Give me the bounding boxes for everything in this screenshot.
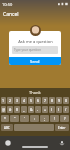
button[interactable]: " <box>10 115 19 122</box>
button[interactable]: ' <box>20 115 29 122</box>
button[interactable]: 1 <box>1 97 6 104</box>
button[interactable]: ? <box>60 115 69 122</box>
button[interactable]: Emoji <box>5 140 11 146</box>
staticText: 7 <box>44 98 47 103</box>
button[interactable]: Enter <box>55 124 69 131</box>
button[interactable]: & <box>28 106 34 113</box>
button[interactable]: 2 <box>7 97 13 104</box>
button[interactable]: @ <box>1 106 6 113</box>
button[interactable]: ! <box>50 115 59 122</box>
staticText: 8 <box>51 98 54 103</box>
staticText: & <box>30 107 33 112</box>
staticText: 1 <box>2 98 5 103</box>
staticText: ABC <box>4 126 10 130</box>
button[interactable]: 6 <box>35 97 41 104</box>
button[interactable]: 7 <box>42 97 48 104</box>
button[interactable]: 4 <box>21 97 27 104</box>
staticText: @ <box>2 107 6 112</box>
staticText: ? <box>64 116 66 121</box>
staticText: ! <box>54 116 55 121</box>
staticText: ( <box>51 107 53 112</box>
staticText: ) <box>58 107 60 112</box>
staticText: - <box>37 107 39 112</box>
staticText: Type your question <box>14 48 42 52</box>
button[interactable]: / <box>63 106 69 113</box>
staticText: $ <box>16 107 19 112</box>
staticText: * <box>4 116 6 121</box>
staticText: ; <box>44 116 45 121</box>
button[interactable]: ) <box>56 106 62 113</box>
button[interactable]: 8 <box>49 97 55 104</box>
staticText: 5 <box>30 98 33 103</box>
staticText: Send <box>30 59 40 64</box>
staticText: 0 <box>65 98 68 103</box>
button[interactable]: ( <box>49 106 55 113</box>
button[interactable]: _ <box>21 106 27 113</box>
staticText: Cancel <box>3 11 19 18</box>
button[interactable]: : <box>30 115 39 122</box>
button[interactable]: $ <box>14 106 20 113</box>
staticText: # <box>9 107 12 112</box>
button[interactable]: 5 <box>28 97 34 104</box>
button[interactable]: - <box>35 106 41 113</box>
staticText: ' <box>24 116 25 121</box>
staticText: " <box>14 116 16 121</box>
staticText: + <box>44 107 47 112</box>
button[interactable]: # <box>7 106 13 113</box>
staticText: Ask me a question <box>18 39 53 44</box>
staticText: Thank <box>29 90 41 95</box>
staticText: 10:50 <box>2 2 13 7</box>
button[interactable]: * <box>1 115 9 122</box>
staticText: 3 <box>16 98 19 103</box>
button[interactable]: + <box>42 106 48 113</box>
button[interactable]: ABC <box>1 124 13 131</box>
button[interactable]: 3 <box>14 97 20 104</box>
staticText: 4 <box>23 98 26 103</box>
button[interactable]: Send <box>9 57 61 65</box>
staticText: Enter <box>58 126 66 130</box>
staticText: _ <box>23 107 25 112</box>
button[interactable]: 9 <box>56 97 62 104</box>
staticText: 9 <box>58 98 61 103</box>
staticText: / <box>65 107 67 112</box>
button[interactable]: Voice input <box>59 140 65 146</box>
staticText: 2 <box>9 98 12 103</box>
button[interactable]: 0 <box>63 97 69 104</box>
button[interactable]: Cancel <box>2 10 20 19</box>
staticText: 6 <box>37 98 40 103</box>
button[interactable]: Type your question <box>12 46 58 54</box>
staticText: : <box>34 116 35 121</box>
button[interactable]: ; <box>40 115 49 122</box>
